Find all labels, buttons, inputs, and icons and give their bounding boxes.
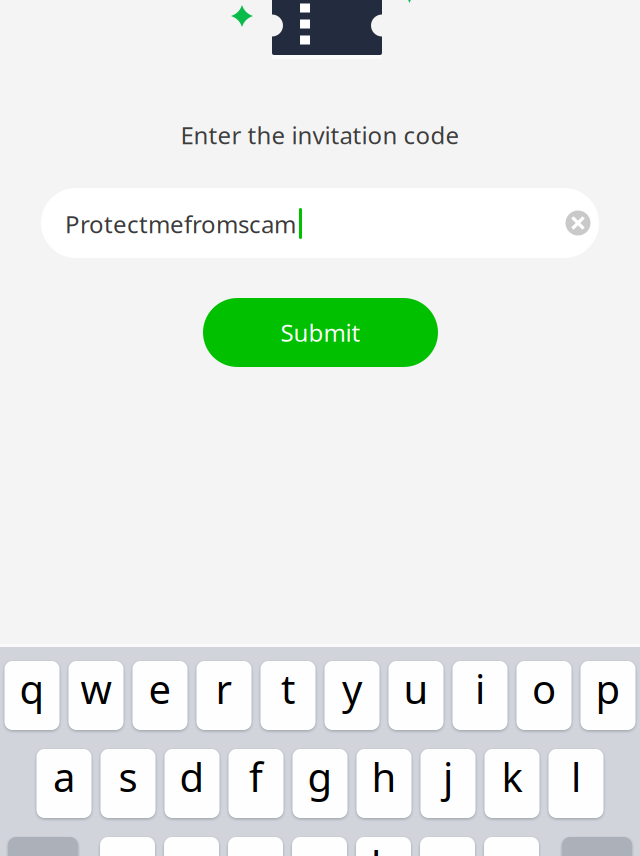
staticText: Protectmefromscam <box>65 208 296 240</box>
button[interactable]: x <box>164 837 219 856</box>
button[interactable]: f <box>228 749 283 818</box>
button[interactable]: c <box>228 837 283 856</box>
button[interactable]: d <box>164 749 219 818</box>
button[interactable]: y <box>324 661 379 730</box>
button[interactable]: Clear text <box>556 201 600 245</box>
button[interactable]: i <box>452 661 507 730</box>
button[interactable]: p <box>580 661 635 730</box>
staticText: Enter the invitation code <box>180 119 459 151</box>
staticText: g <box>307 750 332 803</box>
button[interactable] <box>562 837 632 856</box>
staticText: y <box>342 662 362 715</box>
staticText: l <box>571 750 581 803</box>
staticText: Submit <box>280 317 360 348</box>
button[interactable]: w <box>68 661 123 730</box>
staticText: h <box>371 750 396 803</box>
button[interactable]: e <box>132 661 187 730</box>
staticText: f <box>249 750 263 803</box>
button[interactable]: v <box>292 837 347 856</box>
staticText: e <box>148 662 171 715</box>
button[interactable]: g <box>292 749 347 818</box>
staticText: u <box>403 662 428 715</box>
staticText: w <box>80 662 111 715</box>
button[interactable]: Submit <box>203 298 438 367</box>
staticText: i <box>475 662 485 715</box>
staticText: j <box>443 750 453 803</box>
button[interactable]: k <box>484 749 539 818</box>
button[interactable]: s <box>100 749 155 818</box>
button[interactable]: o <box>516 661 571 730</box>
button[interactable]: n <box>420 837 475 856</box>
button[interactable]: h <box>356 749 411 818</box>
staticText: k <box>501 750 522 803</box>
button[interactable]: q <box>4 661 59 730</box>
staticText: s <box>118 750 137 803</box>
staticText: t <box>281 662 295 715</box>
staticText: d <box>179 750 204 803</box>
staticText: a <box>53 750 75 803</box>
staticText: q <box>19 662 44 715</box>
staticText: b <box>371 838 396 856</box>
button[interactable] <box>8 837 78 856</box>
button[interactable]: r <box>196 661 251 730</box>
button[interactable]: a <box>36 749 91 818</box>
staticText: o <box>532 662 556 715</box>
button[interactable]: Invitation code <box>41 188 599 258</box>
button[interactable]: b <box>356 837 411 856</box>
button[interactable]: z <box>100 837 155 856</box>
button[interactable]: l <box>548 749 603 818</box>
button[interactable]: t <box>260 661 315 730</box>
button[interactable]: u <box>388 661 443 730</box>
button[interactable]: m <box>484 837 539 856</box>
staticText: r <box>215 662 232 715</box>
button[interactable]: j <box>420 749 475 818</box>
staticText: p <box>595 662 620 715</box>
